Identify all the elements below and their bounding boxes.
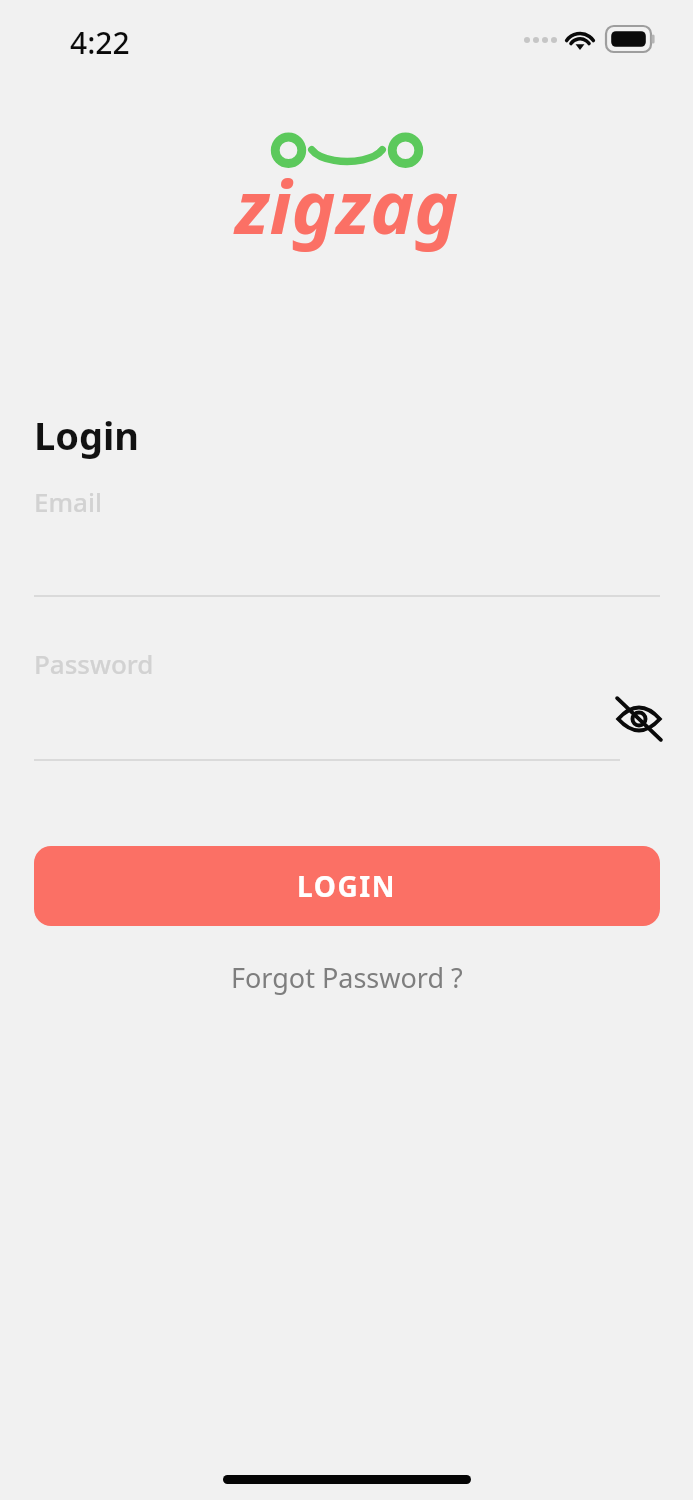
staticText: Password bbox=[34, 646, 154, 681]
button[interactable]: Password bbox=[34, 640, 620, 762]
staticText: 4:22 bbox=[70, 22, 130, 63]
button[interactable]: LOGIN bbox=[34, 846, 660, 926]
staticText: zigzag bbox=[0, 155, 693, 256]
staticText: Email bbox=[34, 484, 103, 519]
staticText: Login bbox=[34, 409, 140, 461]
button[interactable]: Show password bbox=[606, 686, 672, 752]
staticText: Forgot Password ? bbox=[231, 959, 463, 996]
staticText: LOGIN bbox=[297, 867, 397, 905]
button[interactable]: Email bbox=[34, 478, 660, 598]
button[interactable]: Forgot Password ? bbox=[215, 953, 479, 1002]
